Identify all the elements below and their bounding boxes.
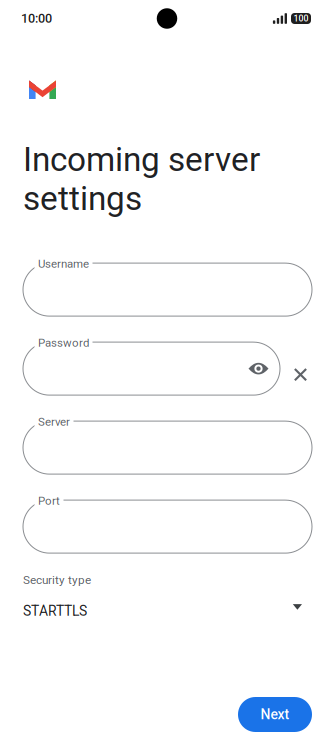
staticText: Next xyxy=(260,706,289,723)
staticText: Server xyxy=(38,415,70,428)
staticText: STARTTLS xyxy=(23,603,87,619)
staticText: Username xyxy=(38,257,89,270)
button[interactable]: Clear password xyxy=(280,352,314,386)
staticText: 10:00 xyxy=(21,11,52,26)
staticText: Port xyxy=(38,494,60,507)
staticText: Password xyxy=(38,336,89,349)
button[interactable]: Next xyxy=(238,697,312,732)
button[interactable]: Security type xyxy=(23,573,312,619)
staticText: Security type xyxy=(23,573,91,587)
staticText: Incoming server settings xyxy=(23,140,260,218)
staticText: 100 xyxy=(293,13,308,24)
